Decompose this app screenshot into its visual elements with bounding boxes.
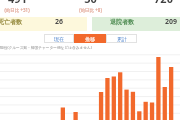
- button[interactable]: 累計: [106, 34, 137, 43]
- staticText: 720: [154, 0, 173, 6]
- button[interactable]: 死亡者数: [0, 17, 87, 31]
- button[interactable]: 退院者数: [92, 17, 180, 31]
- staticText: (前日比 +31): [4, 7, 30, 13]
- staticText: 491: [8, 0, 27, 6]
- staticText: 209: [165, 17, 178, 27]
- staticText: 推移: [85, 36, 95, 42]
- staticText: 26: [55, 17, 64, 27]
- staticText: 死亡者数: [0, 18, 22, 26]
- button[interactable]: 推移: [74, 34, 106, 43]
- staticText: 陽性(クルーズ船・帰国チャーター便などは含みません): [0, 45, 92, 50]
- staticText: 現在: [54, 36, 64, 42]
- staticText: (前日比 +8): [79, 7, 102, 13]
- staticText: 累計: [117, 36, 127, 42]
- staticText: 退院者数: [110, 18, 134, 26]
- staticText: 50: [84, 0, 97, 6]
- button[interactable]: 現在: [44, 34, 74, 43]
